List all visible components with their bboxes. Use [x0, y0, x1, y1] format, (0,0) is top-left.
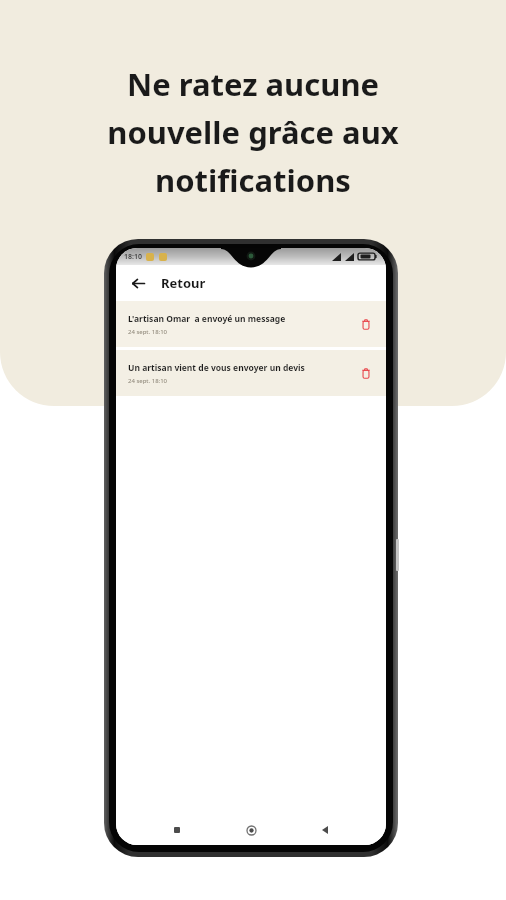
button[interactable]: Home: [238, 817, 264, 843]
button[interactable]: Recent apps: [164, 817, 190, 843]
button[interactable]: Delete notification: [356, 363, 376, 383]
staticText: 24 sept. 18:10: [128, 377, 168, 385]
staticText: Un artisan vient de vous envoyer un devi…: [128, 362, 305, 374]
button[interactable]: Back: [127, 272, 149, 294]
staticText: 18:10: [124, 252, 142, 262]
staticText: Ne ratez aucune nouvelle grâce aux notif…: [107, 63, 399, 201]
staticText: 24 sept. 18:10: [128, 328, 168, 336]
button[interactable]: L'artisan Omar a envoyé un message: [116, 301, 386, 347]
staticText: L'artisan Omar a envoyé un message: [128, 313, 286, 325]
button[interactable]: Back: [312, 817, 338, 843]
button[interactable]: Un artisan vient de vous envoyer un devi…: [116, 350, 386, 396]
staticText: Retour: [161, 274, 206, 292]
button[interactable]: Delete notification: [356, 314, 376, 334]
